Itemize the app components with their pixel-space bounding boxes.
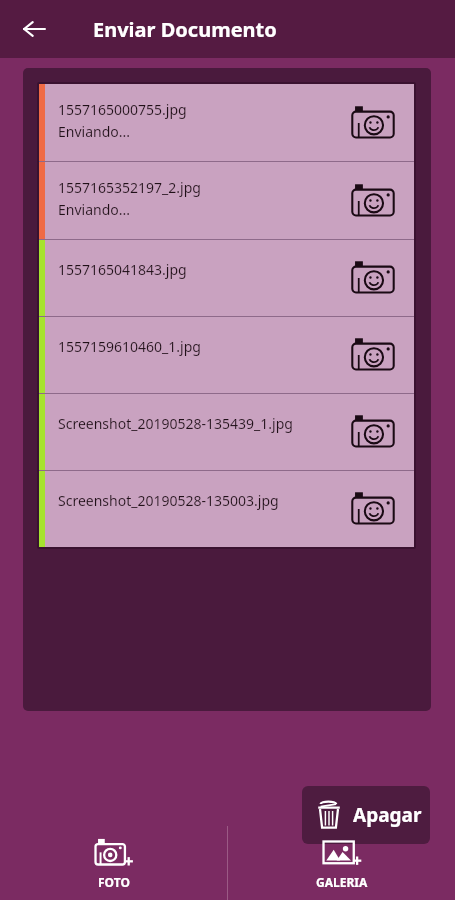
button[interactable]: GALERIA [228,826,455,900]
button[interactable]: Back [12,7,56,51]
staticText: Enviando... [58,200,131,219]
button[interactable]: 1557159610460_1.jpg [39,317,414,393]
button[interactable]: Screenshot_20190528-135439_1.jpg [39,394,414,470]
button[interactable]: 1557165352197_2.jpg [39,162,414,239]
staticText: 1557165352197_2.jpg [58,178,201,197]
staticText: 1557165000755.jpg [58,100,187,119]
button[interactable]: 1557165041843.jpg [39,240,414,316]
staticText: Screenshot_20190528-135003.jpg [58,491,279,510]
button[interactable]: Apagar [302,786,430,844]
staticText: GALERIA [316,874,368,890]
staticText: Enviar Documento [93,16,277,43]
staticText: FOTO [98,874,130,890]
staticText: 1557159610460_1.jpg [58,337,201,356]
staticText: Apagar [353,802,422,828]
staticText: Enviando... [58,122,131,141]
staticText: Screenshot_20190528-135439_1.jpg [58,414,293,433]
staticText: 1557165041843.jpg [58,260,187,279]
button[interactable]: Screenshot_20190528-135003.jpg [39,471,414,547]
button[interactable]: 1557165000755.jpg [39,84,414,161]
button[interactable]: FOTO [0,826,227,900]
